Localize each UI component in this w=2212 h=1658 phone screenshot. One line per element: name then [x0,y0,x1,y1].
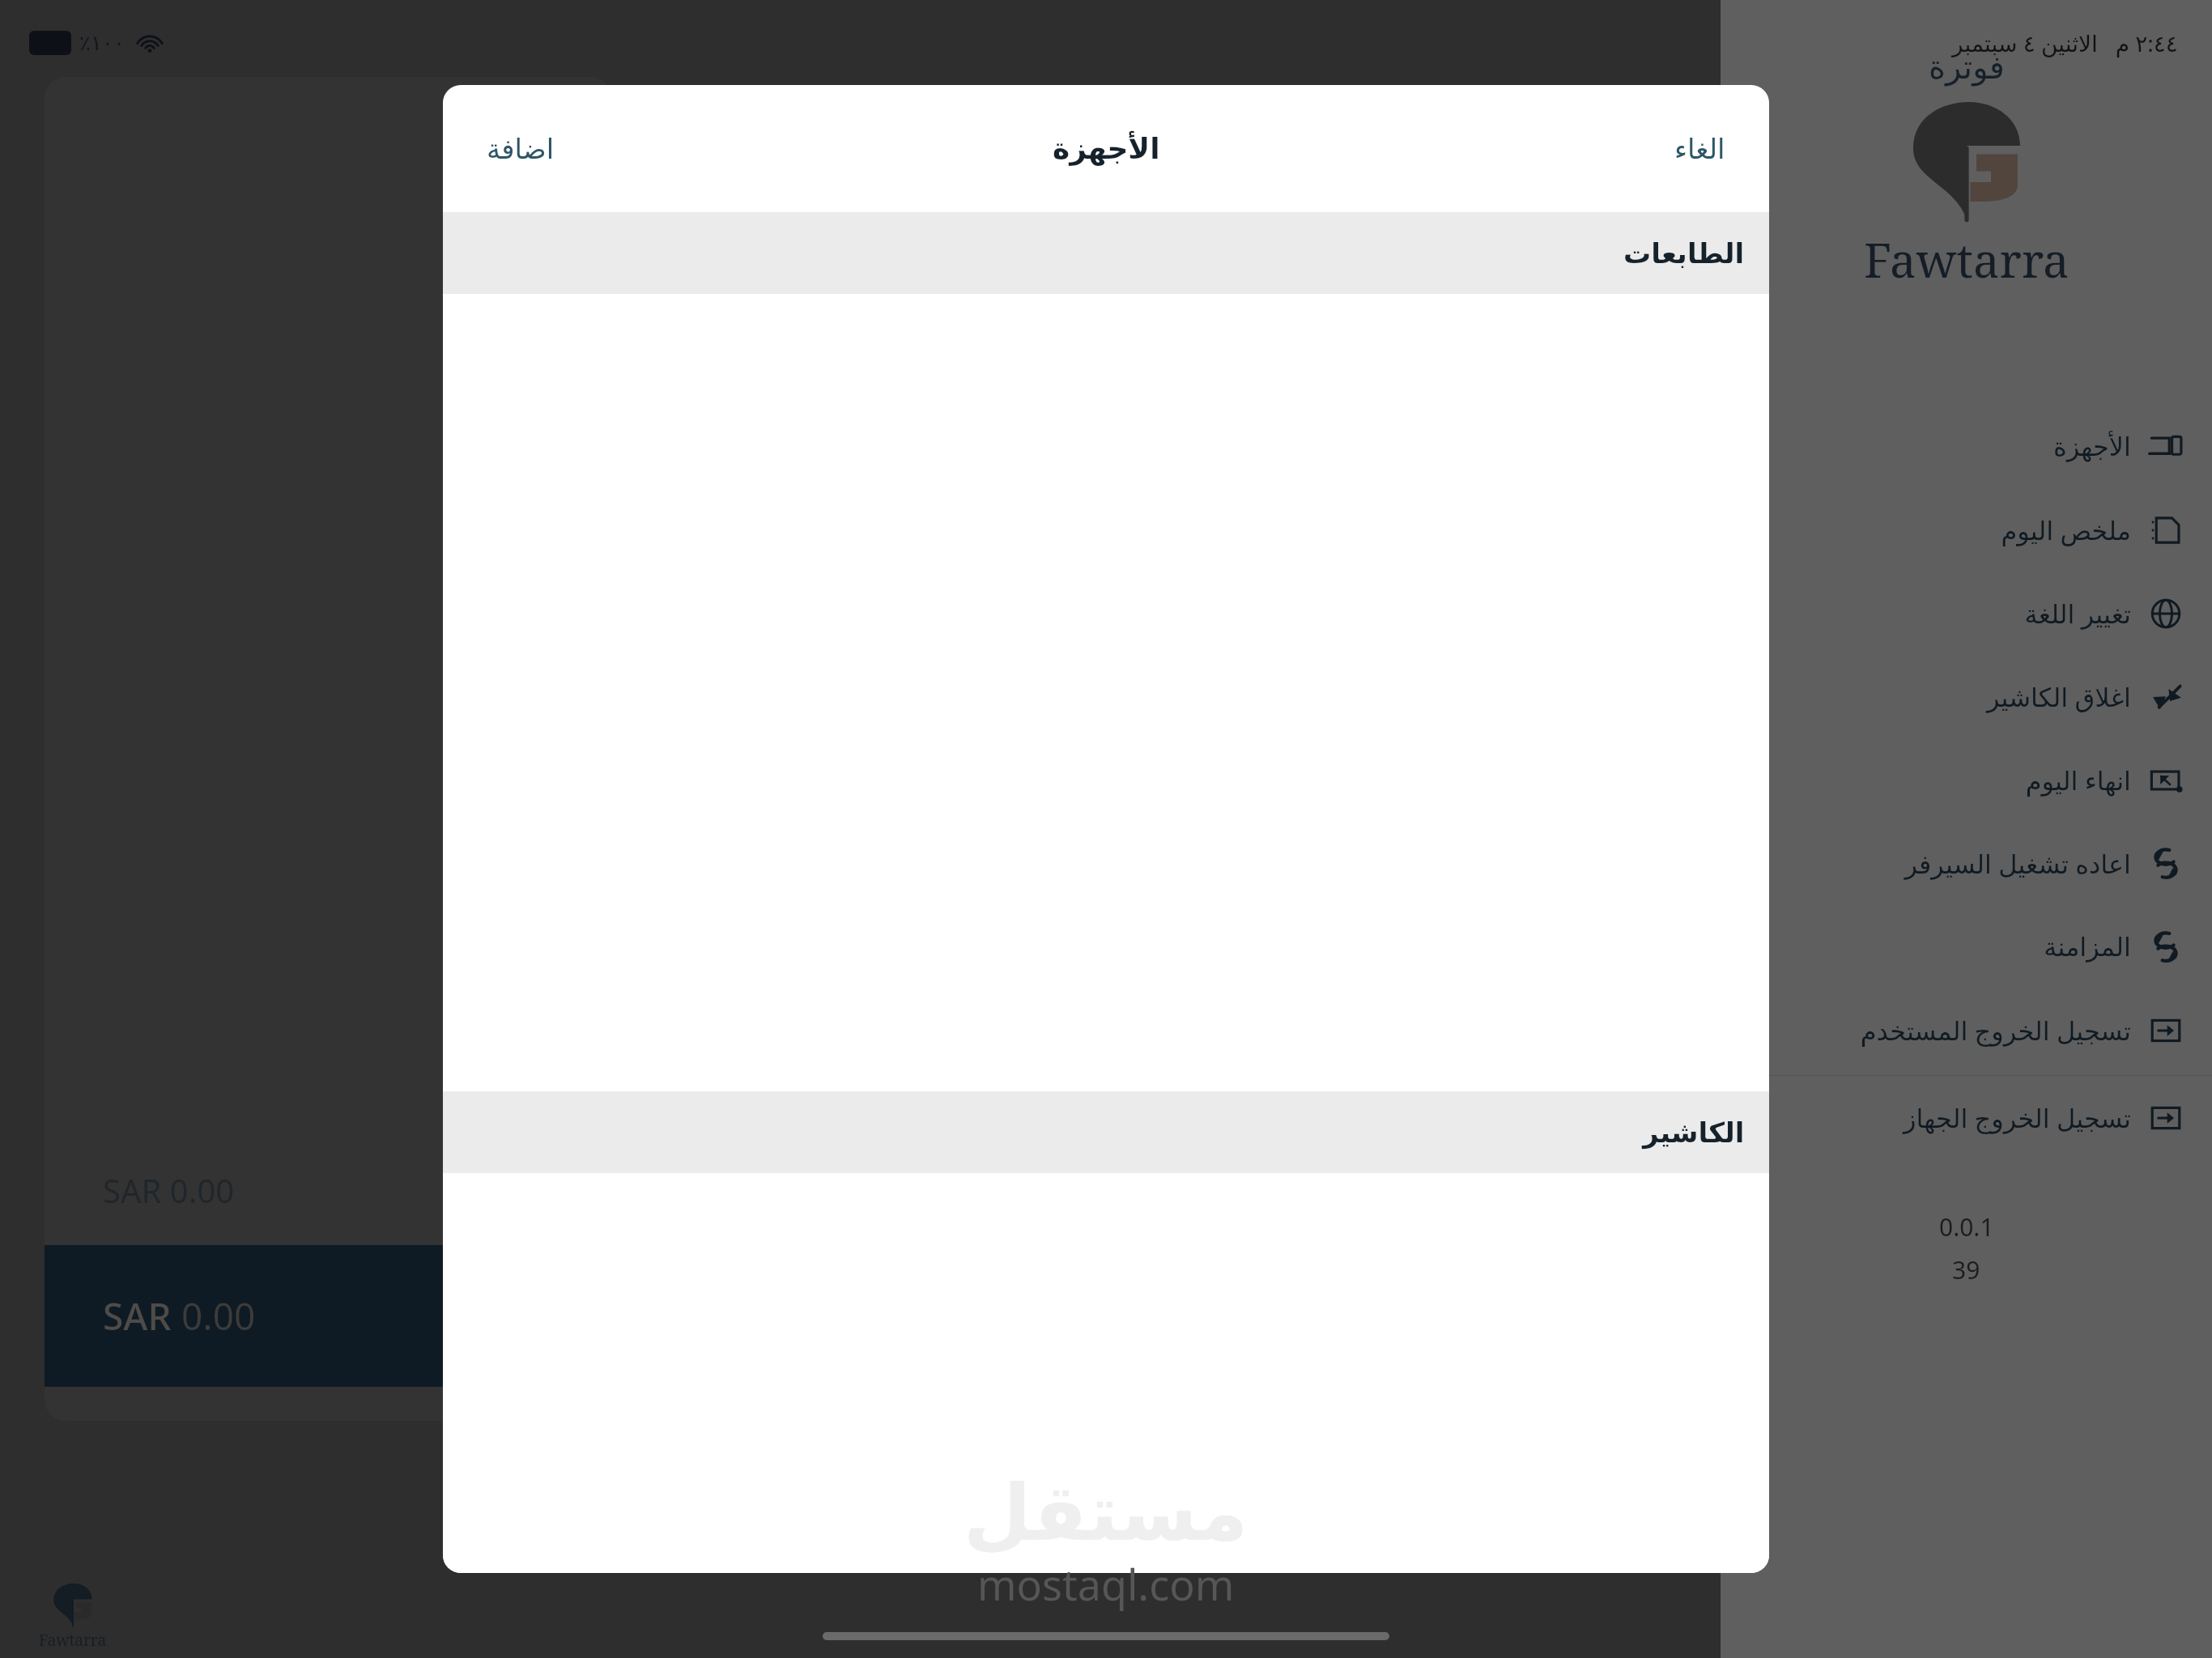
staticText: الكاشير [1643,1116,1745,1149]
staticText: ملخص اليوم [2001,512,2131,548]
button[interactable]: المزامنة [1721,905,2212,988]
staticText: فوترة [1929,49,2005,87]
staticText: الأجهزة [1053,132,1160,166]
staticText: اغلاق الكاشير [1986,679,2131,715]
other: Sync [2149,930,2183,964]
button[interactable]: تسجيل الخروج الجهاز [1721,1076,2212,1159]
staticText: الأجهزة [2052,432,2131,461]
other: Daily summary [2149,513,2183,547]
staticText: تسجيل الخروج المستخدم [1860,1013,2131,1048]
other: Log out [2149,1014,2183,1048]
staticText: تسجيل الخروج الجهاز [1904,1100,2131,1136]
staticText: SAR 0.00 [103,1168,235,1212]
staticText: 0.00 [181,1290,256,1341]
other: Log out [2149,1101,2183,1135]
staticText: مستقل [963,1468,1249,1558]
button[interactable]: الكاشير [443,1091,1769,1173]
button[interactable]: انهاء اليوم [1721,738,2212,822]
other: Devices [2149,430,2183,464]
staticText: 0.0.1 [1939,1210,1994,1243]
staticText: mostaql.com [977,1555,1235,1613]
staticText: Fawtarra [1864,227,2069,291]
staticText: الغاء [1674,133,1725,165]
other: End day [2149,763,2183,797]
staticText: اعاده تشغيل السيرفر [1904,846,2131,882]
other: Sync [2149,847,2183,881]
button[interactable]: الغاء [1661,123,1738,175]
staticText: 39 [1952,1253,1980,1286]
staticText: Fawtarra [39,1630,107,1651]
staticText: ٪١٠٠ [79,31,125,55]
button[interactable]: اعاده تشغيل السيرفر [1721,822,2212,905]
staticText: اضافة [487,133,555,165]
staticText: الطابعات [1623,237,1745,270]
staticText: انهاء اليوم [2025,763,2131,798]
button[interactable]: تسجيل الخروج المستخدم [1721,988,2212,1072]
staticText: SAR [103,1290,181,1341]
staticText: لم يتم التحديد [457,127,581,157]
button[interactable]: الطابعات [443,212,1769,294]
other: Change language [2149,597,2183,631]
other: Close register [2149,680,2183,714]
button[interactable]: اضافة [474,123,568,175]
staticText: المزامنة [2044,932,2131,962]
button[interactable]: ملخص اليوم [1721,488,2212,572]
staticText: تغيير اللغة [2024,596,2131,631]
staticText: ٢:٤٤ م الاثنين ٤ سبتمبر [1952,28,2178,58]
button[interactable]: الأجهزة [1721,405,2212,488]
button[interactable]: تغيير اللغة [1721,572,2212,655]
button[interactable]: اغلاق الكاشير [1721,655,2212,738]
